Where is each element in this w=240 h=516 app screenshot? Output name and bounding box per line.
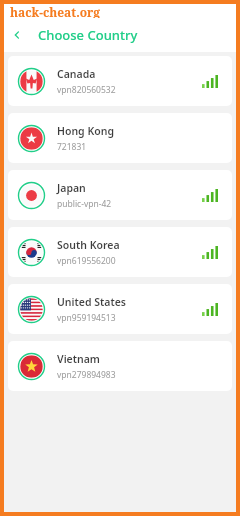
button[interactable]: Back xyxy=(4,22,30,48)
button[interactable]: Vietnam xyxy=(8,341,232,391)
button[interactable]: Japan xyxy=(8,170,232,220)
staticText: public-vpn-42 xyxy=(57,198,112,210)
staticText: Vietnam xyxy=(57,352,100,366)
button[interactable]: Canada xyxy=(8,56,232,106)
button[interactable]: South Korea xyxy=(8,227,232,277)
staticText: hack-cheat.org xyxy=(10,4,101,18)
staticText: vpn959194513 xyxy=(57,312,116,324)
staticText: United States xyxy=(57,295,126,309)
staticText: Canada xyxy=(57,67,96,81)
staticText: South Korea xyxy=(57,238,120,252)
staticText: Japan xyxy=(57,181,86,195)
staticText: Hong Kong xyxy=(57,124,114,138)
staticText: vpn820560532 xyxy=(57,84,116,96)
button[interactable]: United States xyxy=(8,284,232,334)
staticText: vpn279894983 xyxy=(57,369,116,381)
staticText: 721831 xyxy=(57,141,87,153)
staticText: vpn619556200 xyxy=(57,255,116,267)
button[interactable]: Hong Kong xyxy=(8,113,232,163)
staticText: Choose Country xyxy=(38,26,138,44)
